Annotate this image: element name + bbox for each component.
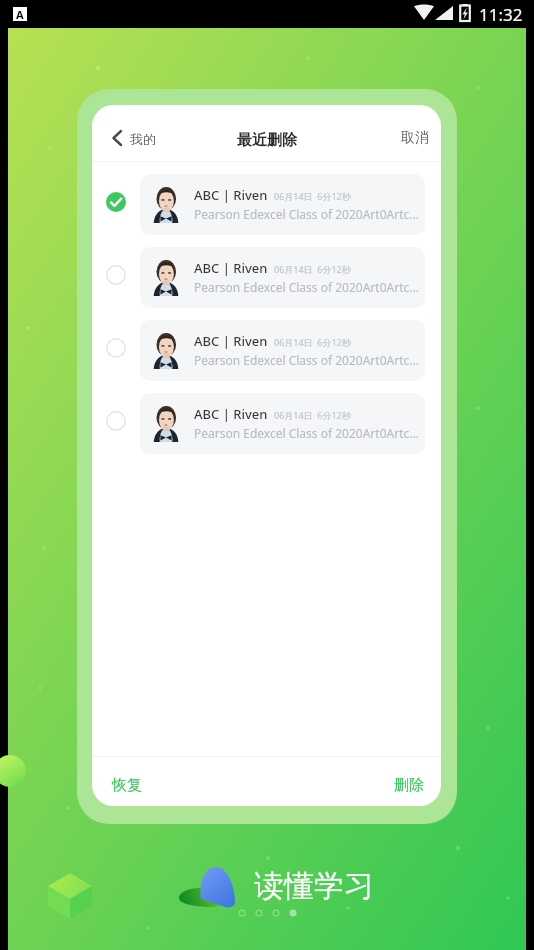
staticText: ABC | Riven: [194, 259, 268, 277]
staticText: 我的: [130, 131, 156, 147]
staticText: Pearson Edexcel Class of 2020Art0Artc...: [194, 425, 419, 441]
staticText: ABC | Riven: [194, 186, 268, 204]
staticText: 06月14日 6分12秒: [274, 409, 351, 421]
button[interactable]: ABC | Riven: [92, 393, 441, 454]
staticText: Pearson Edexcel Class of 2020Art0Artc...: [194, 352, 419, 368]
button[interactable]: 我的: [92, 124, 168, 156]
button[interactable]: ABC | Riven: [92, 247, 441, 308]
staticText: 11:32: [479, 3, 523, 26]
button[interactable]: ABC | Riven: [92, 174, 441, 235]
staticText: Pearson Edexcel Class of 2020Art0Artc...: [194, 206, 419, 222]
staticText: 最近删除: [237, 131, 297, 150]
button[interactable]: 取消: [387, 120, 441, 160]
button[interactable]: ABC | Riven: [92, 320, 441, 381]
staticText: Pearson Edexcel Class of 2020Art0Artc...: [194, 279, 419, 295]
staticText: 06月14日 6分12秒: [274, 336, 351, 348]
staticText: 删除: [394, 776, 424, 795]
staticText: 读懂学习: [254, 867, 374, 905]
staticText: 06月14日 6分12秒: [274, 263, 351, 275]
staticText: ABC | Riven: [194, 405, 268, 423]
staticText: ABC | Riven: [194, 332, 268, 350]
staticText: 06月14日 6分12秒: [274, 190, 351, 202]
staticText: 取消: [401, 129, 429, 147]
staticText: 恢复: [112, 776, 142, 795]
button[interactable]: 删除: [378, 764, 441, 805]
button[interactable]: 恢复: [92, 764, 158, 805]
staticText: A: [16, 7, 24, 21]
